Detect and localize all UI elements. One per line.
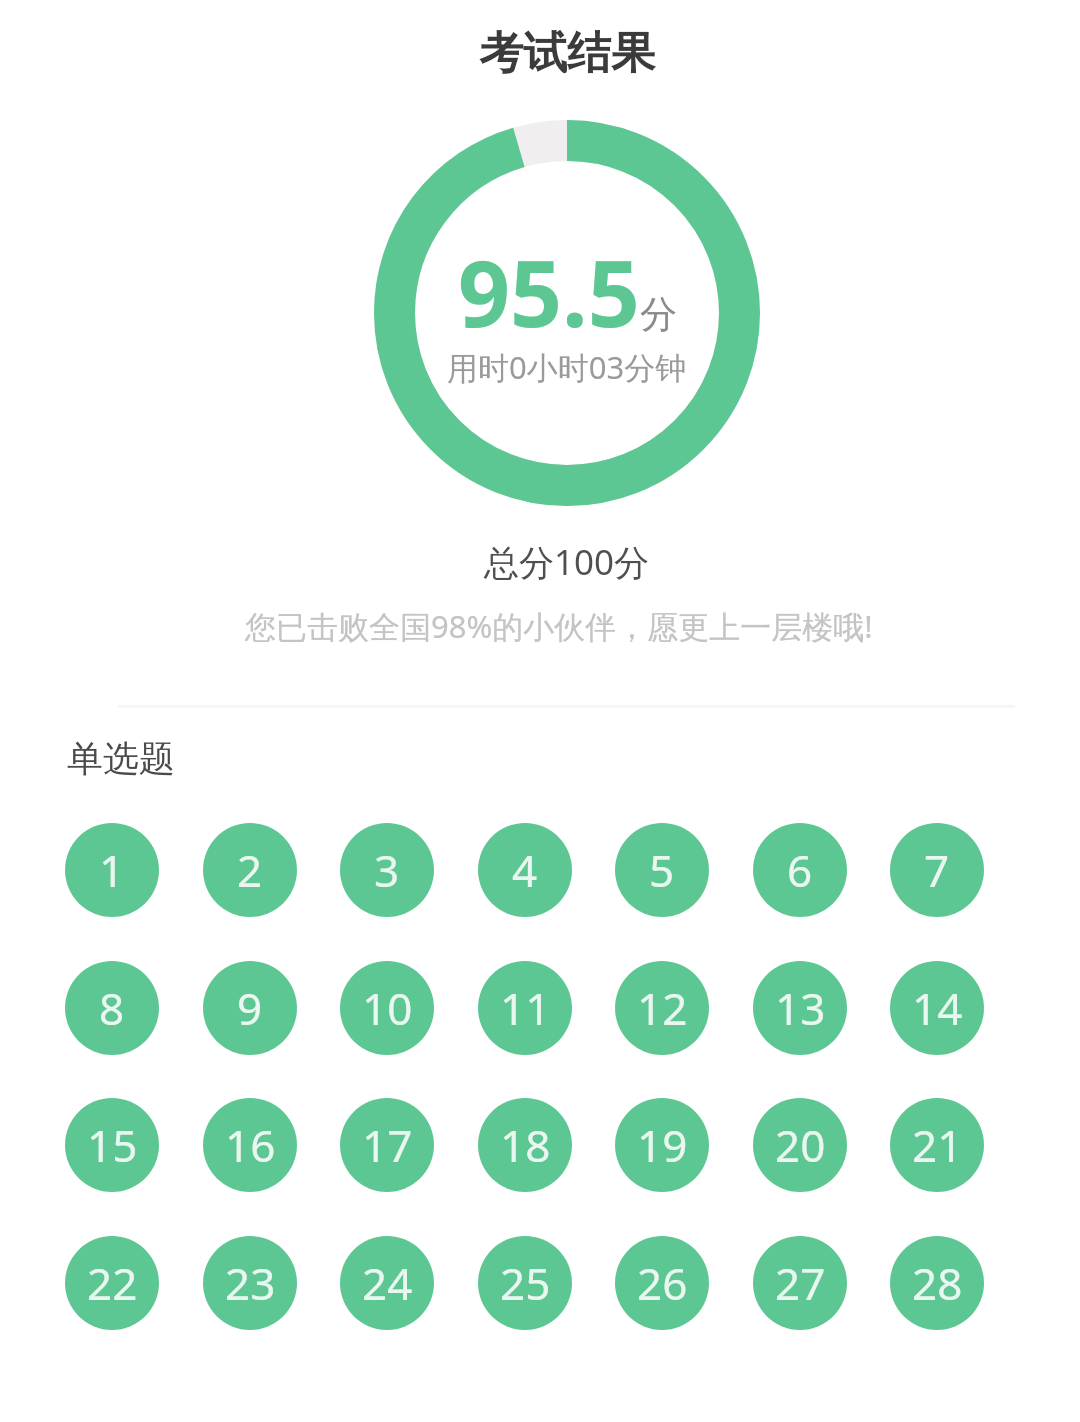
staticText: 6 (787, 840, 813, 900)
staticText: 5 (649, 840, 675, 900)
button[interactable]: 25 (478, 1236, 572, 1330)
staticText: 单选题 (67, 736, 175, 781)
button[interactable]: 19 (615, 1098, 709, 1192)
staticText: 21 (912, 1115, 963, 1175)
button[interactable]: 5 (615, 823, 709, 917)
staticText: 27 (775, 1253, 826, 1313)
button[interactable]: 15 (65, 1098, 159, 1192)
staticText: 13 (775, 978, 826, 1038)
staticText: 考试结果 (479, 26, 655, 81)
button[interactable]: 22 (65, 1236, 159, 1330)
staticText: 25 (500, 1253, 551, 1313)
staticText: 10 (362, 978, 413, 1038)
button[interactable]: 28 (890, 1236, 984, 1330)
staticText: 14 (912, 978, 963, 1038)
staticText: 20 (775, 1115, 826, 1175)
button[interactable]: 9 (203, 961, 297, 1055)
staticText: 用时0小时03分钟 (447, 346, 687, 388)
staticText: 您已击败全国98%的小伙伴，愿更上一层楼哦! (245, 605, 873, 647)
button[interactable]: 12 (615, 961, 709, 1055)
button[interactable]: 26 (615, 1236, 709, 1330)
staticText: 28 (912, 1253, 963, 1313)
staticText: 26 (637, 1253, 688, 1313)
staticText: 22 (87, 1253, 138, 1313)
staticText: 2 (237, 840, 263, 900)
button[interactable]: 16 (203, 1098, 297, 1192)
staticText: 总分100分 (484, 538, 650, 586)
staticText: 24 (362, 1253, 413, 1313)
button[interactable]: 8 (65, 961, 159, 1055)
staticText: 分 (640, 291, 677, 338)
staticText: 16 (225, 1115, 276, 1175)
button[interactable]: 1 (65, 823, 159, 917)
button[interactable]: 21 (890, 1098, 984, 1192)
button[interactable]: 17 (340, 1098, 434, 1192)
staticText: 3 (374, 840, 400, 900)
button[interactable]: 24 (340, 1236, 434, 1330)
staticText: 11 (500, 978, 551, 1038)
button[interactable]: 13 (753, 961, 847, 1055)
button[interactable]: 10 (340, 961, 434, 1055)
button[interactable]: 11 (478, 961, 572, 1055)
button[interactable]: 2 (203, 823, 297, 917)
staticText: 17 (362, 1115, 413, 1175)
staticText: 8 (99, 978, 125, 1038)
staticText: 7 (924, 840, 950, 900)
button[interactable]: 3 (340, 823, 434, 917)
staticText: 4 (512, 840, 538, 900)
button[interactable]: 18 (478, 1098, 572, 1192)
staticText: 9 (237, 978, 263, 1038)
button[interactable]: 4 (478, 823, 572, 917)
button[interactable]: 7 (890, 823, 984, 917)
staticText: 19 (637, 1115, 688, 1175)
staticText: 18 (500, 1115, 551, 1175)
button[interactable]: 27 (753, 1236, 847, 1330)
staticText: 23 (225, 1253, 276, 1313)
button[interactable]: 20 (753, 1098, 847, 1192)
button[interactable]: 14 (890, 961, 984, 1055)
staticText: 12 (637, 978, 688, 1038)
button[interactable]: 23 (203, 1236, 297, 1330)
staticText: 95.5 (458, 230, 640, 354)
staticText: 1 (99, 840, 125, 900)
button[interactable]: 6 (753, 823, 847, 917)
staticText: 15 (87, 1115, 138, 1175)
